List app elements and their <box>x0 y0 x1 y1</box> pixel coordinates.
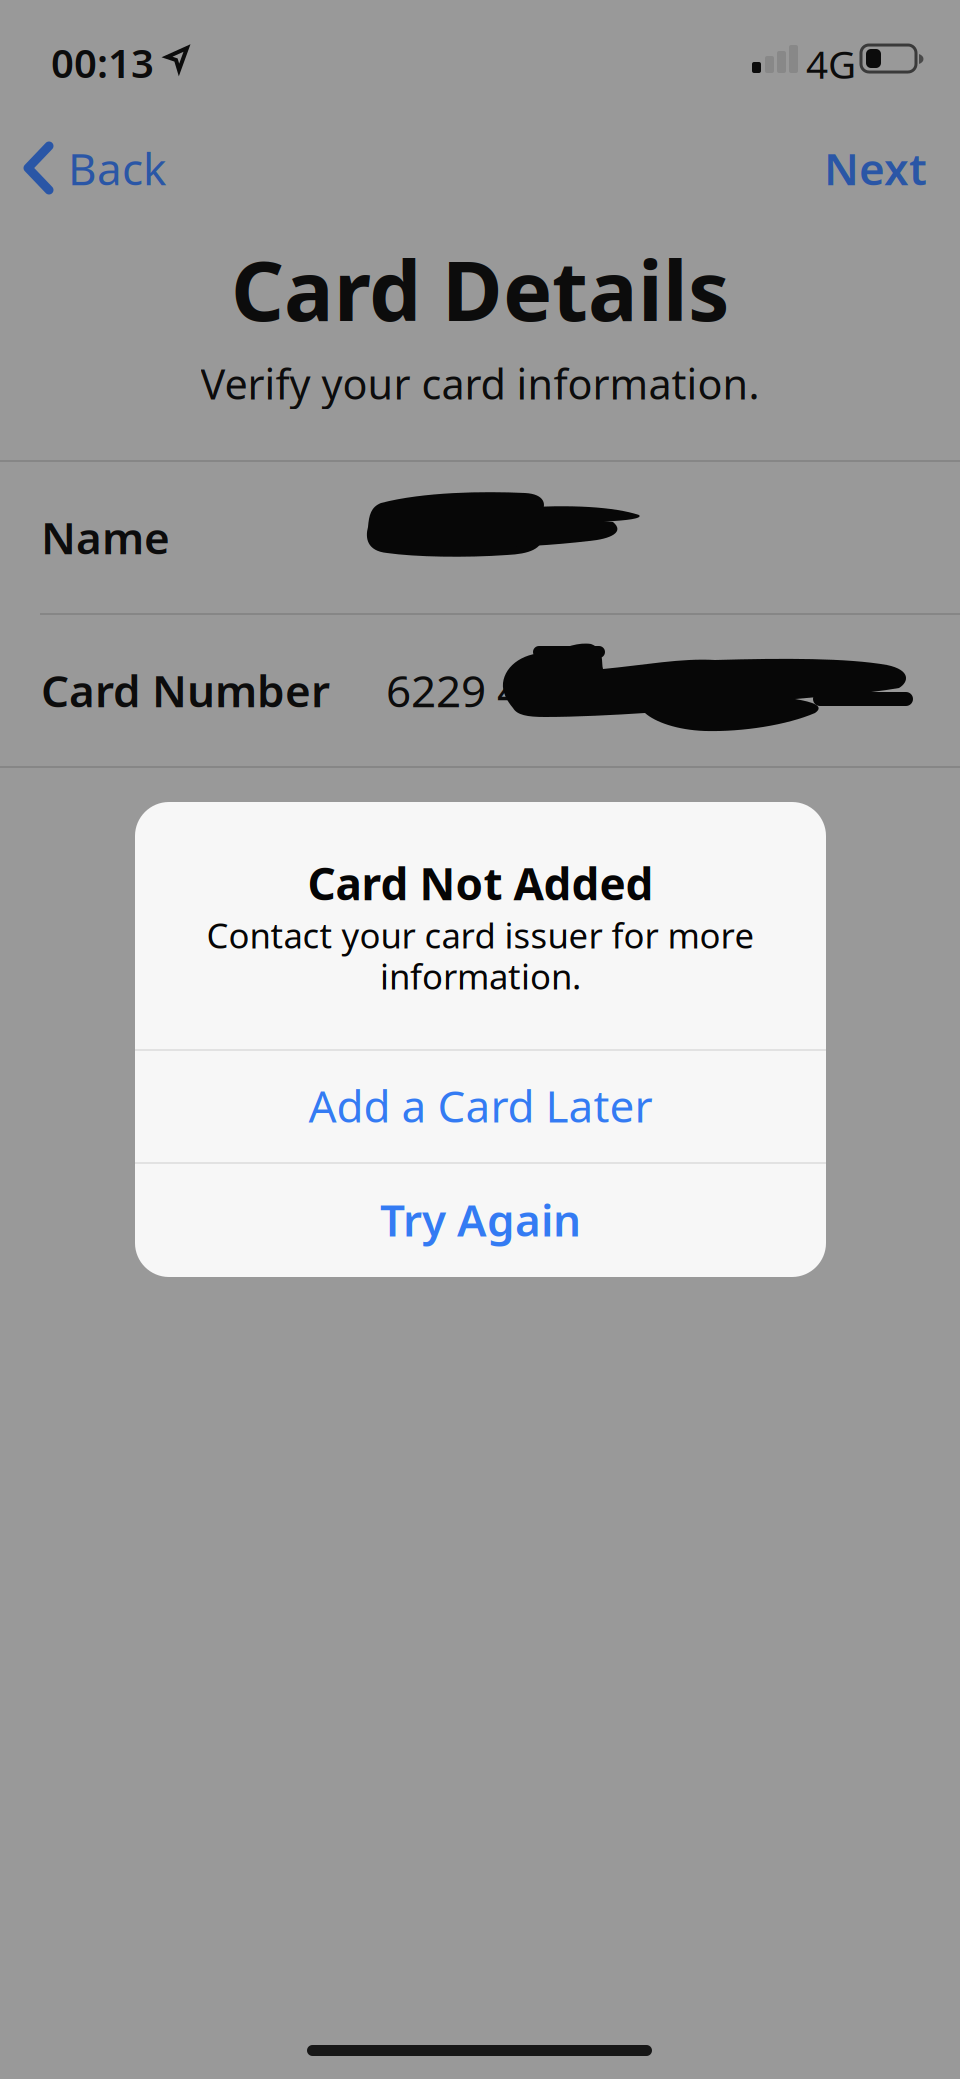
staticText: Name <box>41 508 170 566</box>
staticText: Contact your card issuer for more <box>206 912 754 958</box>
button[interactable]: Card Number <box>0 615 960 766</box>
staticText: Add a Card Later <box>308 1076 652 1135</box>
button[interactable]: Try Again <box>135 1162 826 1277</box>
staticText: Verify your card information. <box>200 356 759 411</box>
staticText: Card Number <box>41 661 330 719</box>
button[interactable]: Add a Card Later <box>135 1049 826 1162</box>
button[interactable]: Back <box>0 118 170 208</box>
staticText: Back <box>68 139 166 197</box>
staticText: 00:13 <box>51 36 154 89</box>
staticText: Next <box>824 139 927 197</box>
button[interactable]: Next <box>800 118 930 208</box>
staticText: 4G <box>806 38 856 89</box>
staticText: Card Not Added <box>307 854 653 912</box>
button[interactable]: Name <box>0 462 960 613</box>
staticText: 6229 4 <box>386 661 522 719</box>
staticText: Card Details <box>231 234 729 344</box>
staticText: Try Again <box>380 1190 581 1249</box>
staticText: information. <box>380 953 581 999</box>
